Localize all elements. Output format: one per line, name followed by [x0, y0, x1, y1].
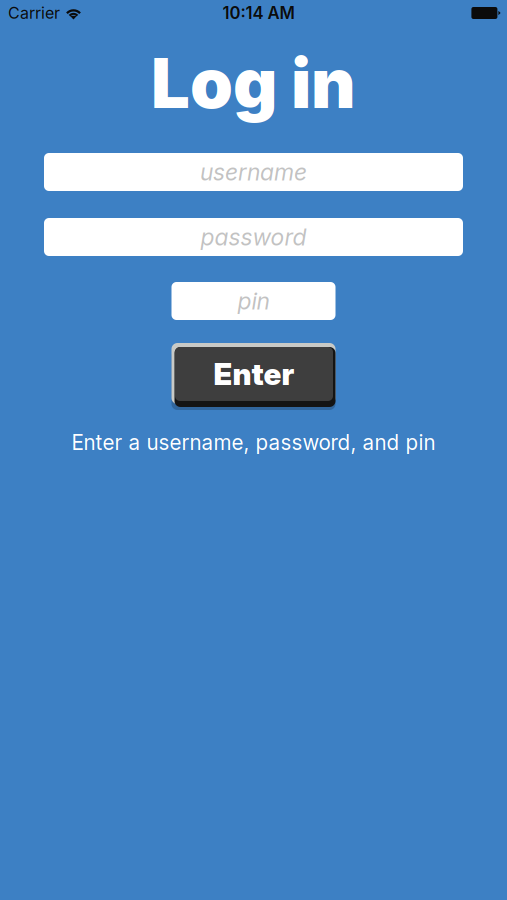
staticText: Carrier: [8, 3, 60, 23]
button[interactable]: password: [44, 218, 463, 256]
staticText: password: [200, 223, 306, 251]
button[interactable]: Enter: [171, 343, 335, 407]
staticText: 10:14 AM: [222, 3, 294, 23]
staticText: Enter a username, password, and pin: [71, 430, 435, 455]
staticText: username: [200, 158, 307, 186]
staticText: pin: [237, 287, 269, 315]
button[interactable]: pin: [171, 282, 335, 320]
staticText: Log in: [151, 41, 356, 125]
staticText: Enter: [213, 356, 294, 392]
button[interactable]: username: [44, 153, 463, 191]
